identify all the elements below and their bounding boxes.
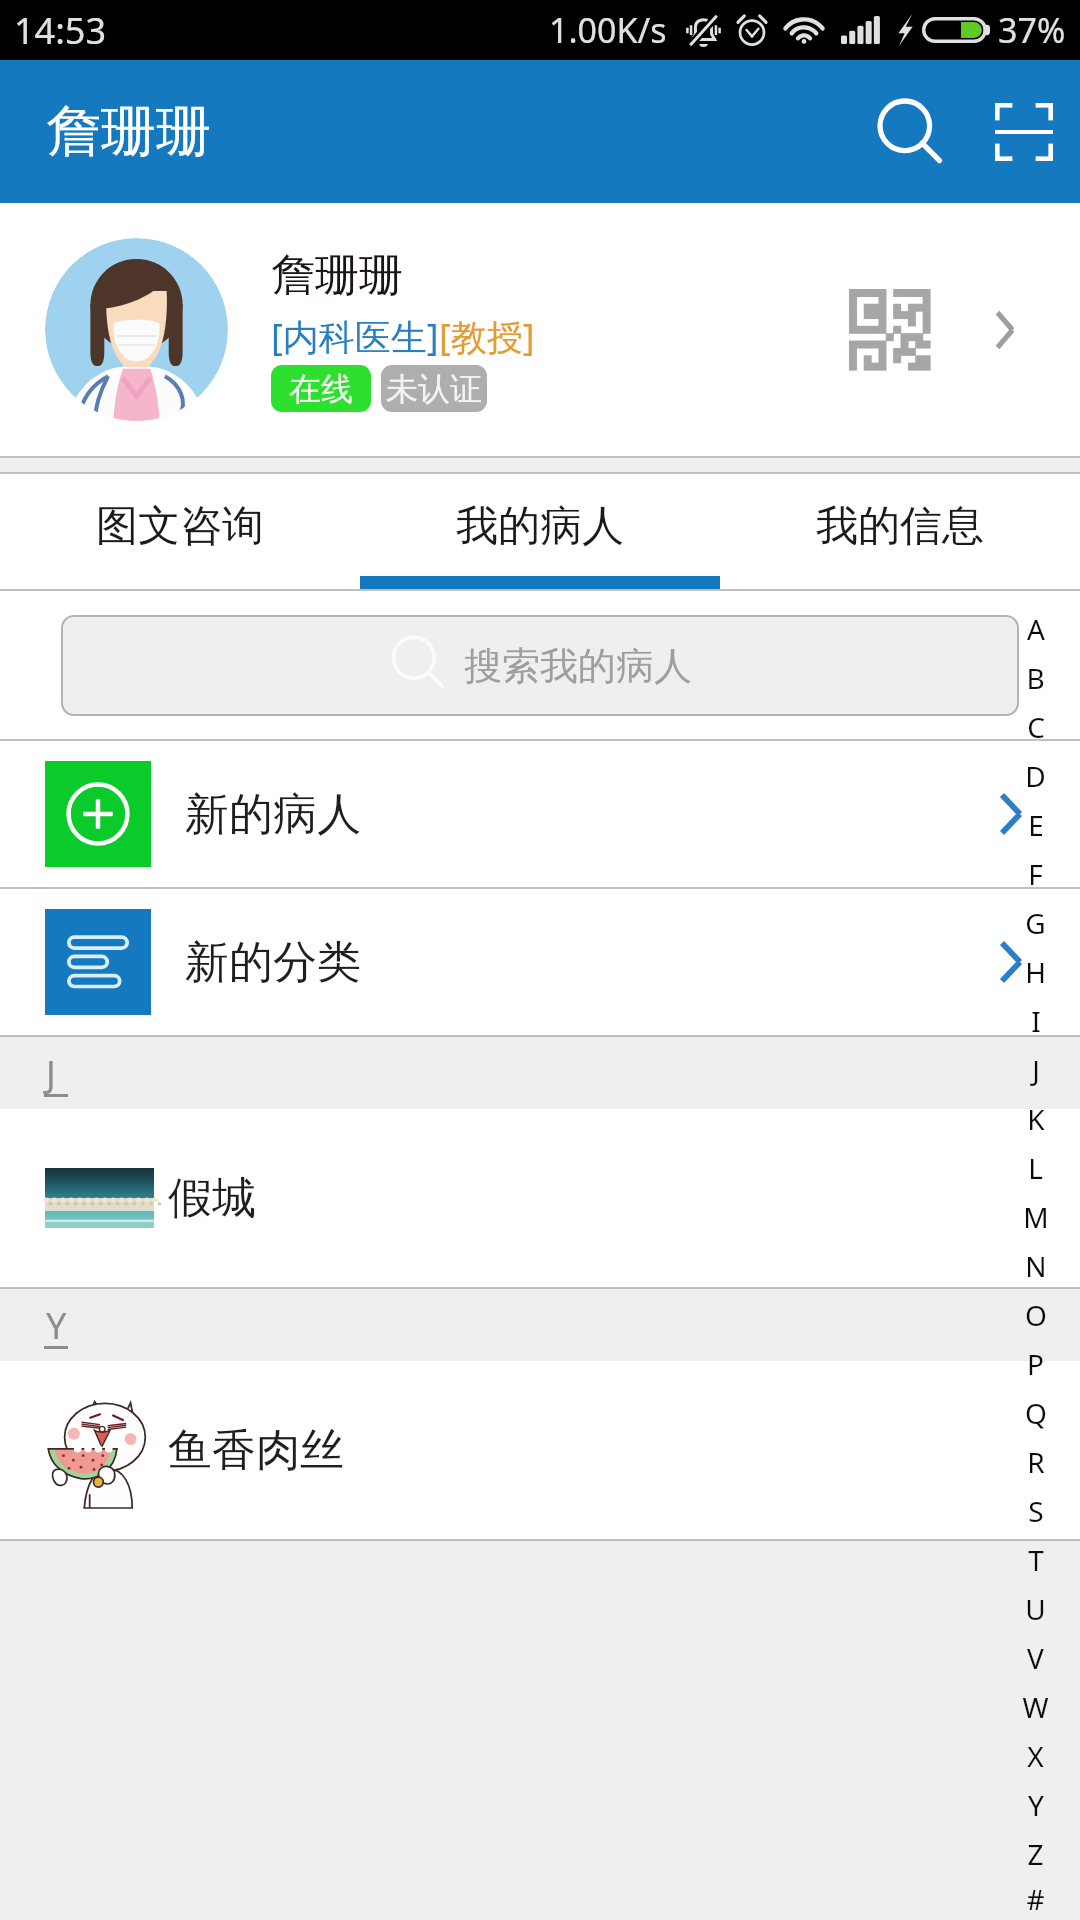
button[interactable]: 在线 xyxy=(271,365,371,412)
button[interactable]: 新的分类 xyxy=(0,889,1080,1035)
staticText: V xyxy=(1027,1639,1044,1677)
button[interactable]: C xyxy=(991,702,1080,751)
staticText: 新的分类 xyxy=(185,935,361,990)
button[interactable]: 我的病人 xyxy=(360,474,720,578)
staticText: 1.00K/s xyxy=(549,7,667,53)
button[interactable]: J xyxy=(991,1045,1080,1094)
button[interactable]: F xyxy=(991,849,1080,898)
staticText: 搜索我的病人 xyxy=(464,642,692,690)
staticText: 假城 xyxy=(168,1171,256,1226)
staticText: H xyxy=(1025,953,1046,991)
staticText: 37% xyxy=(998,7,1066,53)
staticText: C xyxy=(1027,708,1045,746)
button[interactable]: QR code xyxy=(849,289,930,370)
button[interactable]: 鱼香肉丝 xyxy=(0,1361,1080,1539)
button[interactable]: S xyxy=(991,1486,1080,1535)
staticText: Y xyxy=(46,1301,67,1350)
button[interactable]: P xyxy=(991,1339,1080,1388)
staticText: X xyxy=(1027,1737,1044,1775)
button[interactable]: 假城 xyxy=(0,1109,1080,1287)
staticText: I xyxy=(1031,1002,1041,1040)
button[interactable]: Scan QR code xyxy=(967,75,1080,188)
staticText: 詹珊珊 xyxy=(46,97,211,166)
button[interactable]: E xyxy=(991,800,1080,849)
button[interactable]: N xyxy=(991,1241,1080,1290)
button[interactable]: K xyxy=(991,1094,1080,1143)
staticText: [内科医生] xyxy=(271,312,439,361)
staticText: R xyxy=(1027,1443,1045,1481)
staticText: 图文咨询 xyxy=(96,500,264,553)
button[interactable]: V xyxy=(991,1633,1080,1682)
staticText: M xyxy=(1023,1198,1049,1236)
button[interactable]: Q xyxy=(991,1388,1080,1437)
staticText: Y xyxy=(1028,1786,1044,1824)
button[interactable]: A xyxy=(991,604,1080,653)
button[interactable]: X xyxy=(991,1731,1080,1780)
button[interactable]: M xyxy=(991,1192,1080,1241)
staticText: A xyxy=(1027,610,1045,648)
staticText: S xyxy=(1028,1492,1044,1530)
button[interactable]: # xyxy=(991,1878,1080,1920)
staticText: Q xyxy=(1025,1394,1047,1432)
staticText: E xyxy=(1028,806,1044,844)
staticText: K xyxy=(1027,1100,1045,1138)
staticText: 詹珊珊 xyxy=(271,248,403,303)
button[interactable]: G xyxy=(991,898,1080,947)
staticText: U xyxy=(1025,1590,1046,1628)
staticText: 在线 xyxy=(289,369,353,409)
staticText: F xyxy=(1028,855,1043,893)
button[interactable]: R xyxy=(991,1437,1080,1486)
button[interactable]: Z xyxy=(991,1829,1080,1878)
staticText: [教授] xyxy=(439,312,535,361)
button[interactable]: H xyxy=(991,947,1080,996)
button[interactable]: B xyxy=(991,653,1080,702)
staticText: N xyxy=(1025,1247,1047,1285)
button[interactable]: 詹珊珊 xyxy=(0,203,1080,456)
staticText: J xyxy=(46,1049,56,1098)
staticText: 未认证 xyxy=(386,369,482,409)
button[interactable]: D xyxy=(991,751,1080,800)
button[interactable]: W xyxy=(991,1682,1080,1731)
staticText: D xyxy=(1025,757,1046,795)
staticText: 鱼香肉丝 xyxy=(168,1423,344,1478)
staticText: L xyxy=(1028,1149,1043,1187)
button[interactable]: U xyxy=(991,1584,1080,1633)
staticText: 我的信息 xyxy=(816,500,984,553)
button[interactable]: L xyxy=(991,1143,1080,1192)
button[interactable]: O xyxy=(991,1290,1080,1339)
staticText: J xyxy=(1032,1051,1040,1089)
button[interactable]: 搜索我的病人 xyxy=(63,617,1017,714)
staticText: Z xyxy=(1027,1835,1044,1873)
button[interactable]: 图文咨询 xyxy=(0,474,360,578)
button[interactable]: Y xyxy=(991,1780,1080,1829)
button[interactable]: 我的信息 xyxy=(720,474,1080,578)
staticText: B xyxy=(1026,659,1045,697)
staticText: 我的病人 xyxy=(456,500,624,553)
staticText: G xyxy=(1025,904,1046,942)
staticText: T xyxy=(1028,1541,1044,1579)
button[interactable]: 新的病人 xyxy=(0,741,1080,887)
staticText: # xyxy=(1026,1880,1045,1918)
staticText: W xyxy=(1022,1688,1049,1726)
button[interactable]: 未认证 xyxy=(381,365,487,412)
button[interactable]: Search xyxy=(854,75,967,188)
staticText: 新的病人 xyxy=(185,787,361,842)
staticText: O xyxy=(1025,1296,1047,1334)
staticText: P xyxy=(1027,1345,1044,1383)
staticText: 14:53 xyxy=(14,6,107,55)
button[interactable]: I xyxy=(991,996,1080,1045)
button[interactable]: T xyxy=(991,1535,1080,1584)
